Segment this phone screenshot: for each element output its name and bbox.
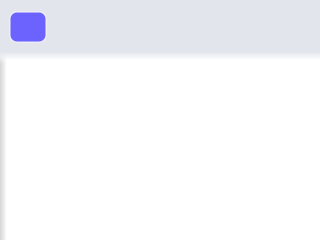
button[interactable]: Back: [9, 11, 47, 43]
